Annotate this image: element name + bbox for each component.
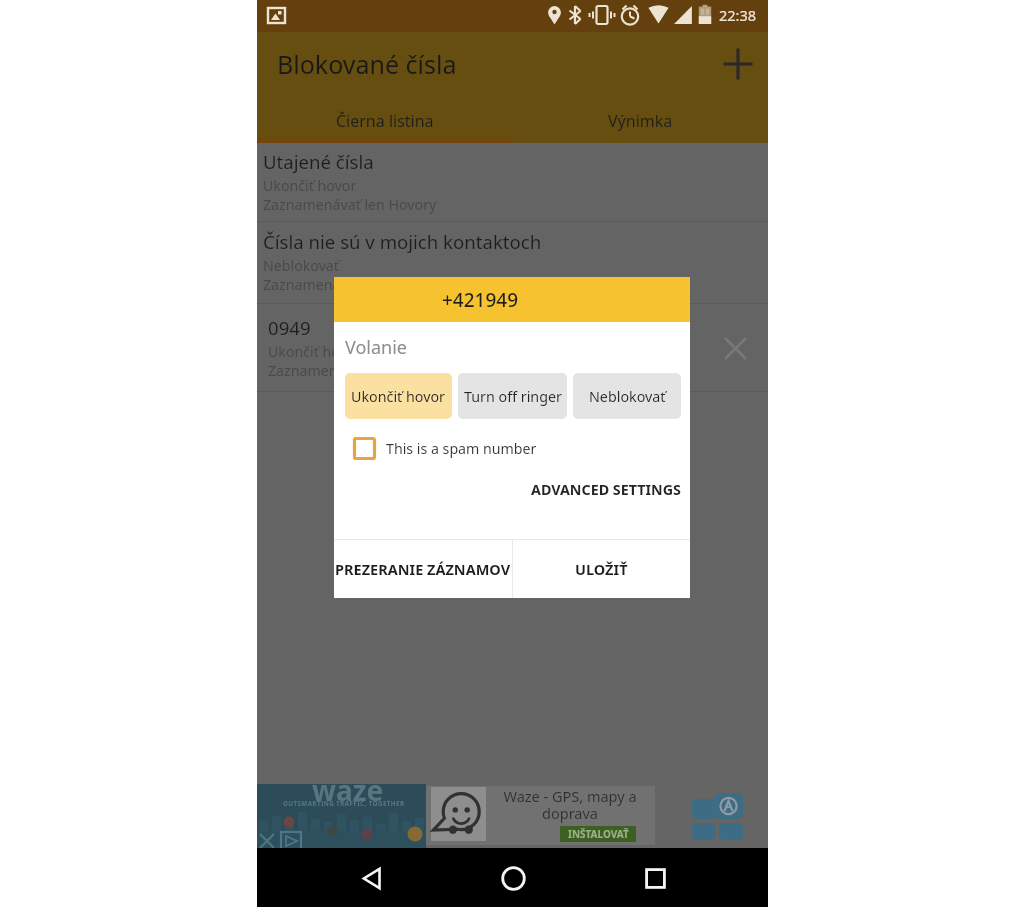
staticText: Ukončiť hovor xyxy=(351,387,446,406)
button[interactable]: Utajené čísla xyxy=(257,143,768,221)
button[interactable]: Výnimka xyxy=(512,99,768,143)
staticText: Zaznamenávať len Hovory xyxy=(263,195,437,214)
staticText: Ukončiť hovor xyxy=(268,342,362,361)
button[interactable]: PREZERANIE ZÁZNAMOV xyxy=(334,540,512,598)
staticText: 0949 xyxy=(268,315,311,340)
staticText: Turn off ringer xyxy=(464,387,562,406)
other: Ad choices xyxy=(688,792,743,840)
staticText: 22:38 xyxy=(719,5,757,25)
button[interactable]: Čísla nie sú v mojich kontaktoch xyxy=(257,222,768,303)
staticText: Čísla nie sú v mojich kontaktoch xyxy=(263,229,542,254)
button[interactable]: Čierna listina xyxy=(257,99,512,143)
button[interactable]: Neblokovať xyxy=(573,373,681,419)
staticText: ADVANCED SETTINGS xyxy=(531,480,681,499)
staticText: Výnimka xyxy=(608,110,673,132)
button[interactable]: Remove entry xyxy=(712,325,758,371)
staticText: PREZERANIE ZÁZNAMOV xyxy=(335,559,511,579)
button[interactable]: Back xyxy=(348,854,396,902)
button[interactable]: Ukončiť hovor xyxy=(345,373,452,419)
staticText: Neblokovať xyxy=(589,387,666,406)
button[interactable]: INŠTALOVAŤ xyxy=(560,826,636,842)
staticText: Zaznamenávať len Hovory xyxy=(263,275,437,294)
staticText: Zaznamenávať len Hovory xyxy=(268,361,442,380)
button[interactable]: ULOŽIŤ xyxy=(513,540,690,598)
button[interactable]: Add blocked number xyxy=(714,42,762,90)
button[interactable]: Turn off ringer xyxy=(458,373,567,419)
staticText: OUTSMARTING TRAFFIC, TOGETHER xyxy=(283,799,405,807)
staticText: Ukončiť hovor xyxy=(263,176,357,195)
staticText: Waze - GPS, mapy a doprava xyxy=(486,786,654,823)
button[interactable]: Recent apps xyxy=(631,854,679,902)
button[interactable]: This is a spam number xyxy=(350,436,537,461)
staticText: waze xyxy=(312,784,384,809)
staticText: Blokované čísla xyxy=(277,47,457,81)
button[interactable]: ADVANCED SETTINGS xyxy=(334,474,681,504)
button[interactable]: Home xyxy=(489,854,537,902)
staticText: ULOŽIŤ xyxy=(575,559,628,579)
button[interactable]: 0949 xyxy=(257,304,768,391)
staticText: +421949 xyxy=(442,287,519,313)
staticText: Volanie xyxy=(345,335,407,360)
staticText: INŠTALOVAŤ xyxy=(568,827,629,841)
staticText: Čierna listina xyxy=(336,110,434,132)
staticText: This is a spam number xyxy=(386,439,537,458)
staticText: Neblokovať xyxy=(263,256,339,275)
staticText: Utajené čísla xyxy=(263,149,374,174)
